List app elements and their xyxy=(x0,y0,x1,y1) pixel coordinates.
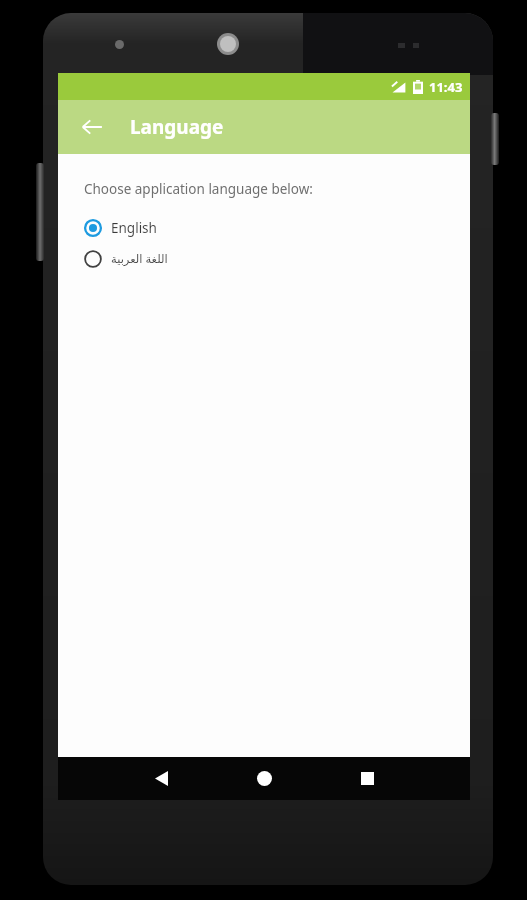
staticText: English xyxy=(111,219,157,237)
staticText: 11:43 xyxy=(429,78,463,96)
button[interactable]: Navigate up xyxy=(70,105,114,149)
button[interactable]: Home xyxy=(242,757,286,800)
button[interactable]: Back xyxy=(139,757,183,800)
staticText: Language xyxy=(130,114,224,140)
staticText: Choose application language below: xyxy=(84,180,313,198)
button[interactable]: Recent apps xyxy=(345,757,389,800)
button[interactable]: English xyxy=(58,212,470,243)
button[interactable]: اللغة العربية xyxy=(58,243,470,274)
staticText: اللغة العربية xyxy=(111,251,168,267)
